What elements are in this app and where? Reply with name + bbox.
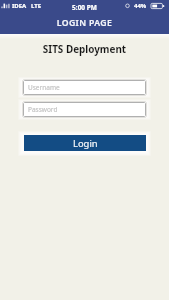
- button[interactable]: Password: [22, 101, 147, 118]
- staticText: IDEA: [12, 2, 27, 10]
- other: Signal strength: [0, 0, 12, 12]
- staticText: LOGIN PAGE: [0, 17, 169, 29]
- staticText: 44%: [134, 2, 147, 10]
- button[interactable]: Login: [24, 135, 146, 151]
- staticText: Password: [28, 105, 58, 114]
- other: Alarm: [125, 0, 130, 12]
- button[interactable]: Username: [22, 79, 147, 96]
- staticText: 5:00 PM: [0, 3, 169, 12]
- other: Battery 44 percent: [151, 2, 165, 10]
- staticText: SITS Deployment: [0, 42, 169, 55]
- staticText: Login: [73, 137, 98, 150]
- staticText: Username: [28, 83, 60, 92]
- staticText: LTE: [31, 2, 42, 10]
